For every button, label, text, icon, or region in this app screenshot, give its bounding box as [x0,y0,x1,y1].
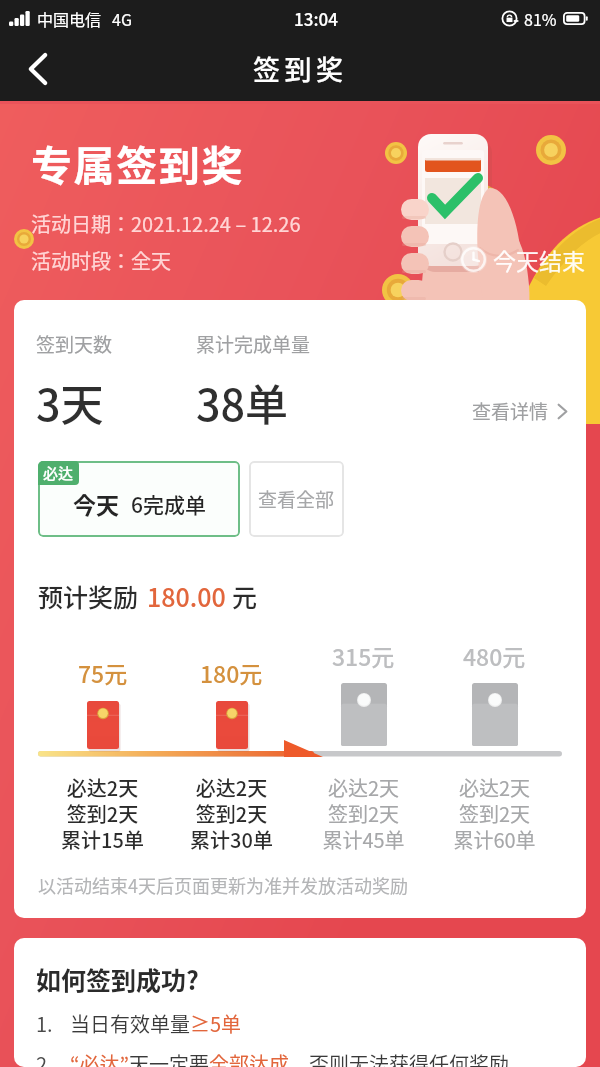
staticText: 1. [36,1009,53,1038]
staticText: ，否则无法获得任何奖励 [289,1049,509,1067]
staticText: 必达2天 签到2天 累计30单 [190,773,273,854]
staticText: 中国电信 [37,7,102,30]
staticText: 4G [112,7,132,30]
staticText: ≥5单 [190,1009,242,1038]
button[interactable]: Back [14,45,62,93]
staticText: 全部达成 [209,1049,289,1067]
staticText: 必达 [43,462,74,484]
staticText: 13:04 [294,6,338,31]
staticText: 3天 [36,371,104,433]
staticText: 必达2天 签到2天 累计15单 [61,773,144,854]
staticText: 查看详情 [472,397,549,425]
staticText: 活动日期：2021.12.24 – 12.26 [31,209,301,238]
staticText: 签到天数 [36,330,113,358]
staticText: 今天结束 [493,243,585,276]
staticText: 2. [36,1049,53,1067]
staticText: 必达2天 签到2天 累计60单 [453,773,536,854]
staticText: 天一定要 [129,1049,209,1067]
staticText: 签到奖 [253,49,348,88]
staticText: 6完成单 [131,489,206,519]
staticText: 38单 [196,371,289,433]
staticText: 专属签到奖 [31,133,244,192]
staticText: 75元 [78,656,128,689]
staticText: 如何签到成功? [36,961,199,997]
staticText: 180.00 [147,578,226,614]
staticText: 当日有效单量 [70,1009,190,1038]
button[interactable]: 查看全部 [249,461,344,537]
staticText: 81% [524,7,557,30]
staticText: 累计完成单量 [196,330,311,358]
staticText: 315元 [332,639,395,672]
button[interactable]: 今天 [38,461,240,537]
staticText: 以活动结束4天后页面更新为准并发放活动奖励 [38,872,408,898]
staticText: 180元 [200,656,263,689]
staticText: 元 [232,578,258,614]
staticText: 480元 [463,639,526,672]
staticText: 必达2天 签到2天 累计45单 [322,773,405,854]
staticText: 预计奖励 [38,578,139,614]
staticText: “必达” [70,1049,129,1067]
staticText: 查看全部 [258,485,335,513]
staticText: 今天 [73,487,119,520]
button[interactable]: 查看详情 [472,397,568,425]
staticText: 活动时段：全天 [31,246,171,275]
